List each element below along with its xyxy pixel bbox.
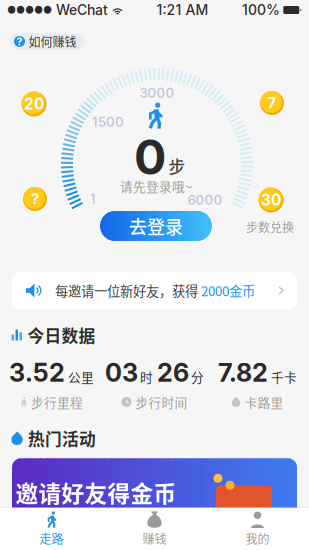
staticText: 邀请好友得金币: [15, 476, 176, 509]
staticText: 千卡: [271, 367, 297, 386]
staticText: 1:21 AM: [156, 1, 208, 18]
staticText: 6000: [187, 192, 222, 208]
staticText: 0: [134, 128, 166, 186]
staticText: 7: [267, 94, 276, 112]
button[interactable]: Coin help: [23, 187, 47, 211]
staticText: 热门活动: [28, 426, 96, 450]
button[interactable]: Coin 7: [260, 91, 284, 115]
staticText: 去登录: [129, 213, 183, 239]
staticText: 公里: [68, 367, 94, 386]
button[interactable]: 赚钱: [103, 508, 206, 550]
staticText: 26: [157, 357, 189, 388]
button[interactable]: 邀请好友得金币: [12, 458, 297, 520]
staticText: 7.82: [218, 357, 268, 388]
staticText: 我的: [245, 530, 269, 547]
staticText: 步: [168, 154, 185, 178]
staticText: 步行时间: [135, 393, 187, 411]
button[interactable]: 去登录: [100, 211, 212, 241]
staticText: WeChat: [52, 1, 112, 18]
staticText: 分: [191, 367, 204, 386]
staticText: 请先登录哦~: [120, 177, 192, 195]
staticText: 1: [90, 191, 96, 207]
staticText: 2000金币: [201, 281, 255, 300]
staticText: 20: [24, 95, 44, 113]
button[interactable]: Coin 30: [258, 187, 283, 212]
staticText: 100%: [242, 1, 280, 18]
staticText: ?: [31, 190, 39, 208]
staticText: 3000: [139, 85, 174, 101]
button[interactable]: 我的: [206, 508, 309, 550]
staticText: 3.52: [9, 357, 65, 388]
staticText: 每邀请一位新好友，获得: [55, 281, 201, 300]
staticText: 今日数据: [27, 323, 95, 347]
staticText: 03: [105, 357, 138, 388]
staticText: 如何赚钱: [28, 33, 76, 50]
staticText: 步数兑换: [246, 218, 294, 236]
staticText: ●●●●●: [7, 4, 52, 16]
staticText: 30: [261, 191, 281, 209]
staticText: 走路: [39, 530, 63, 547]
button[interactable]: Coin 20: [21, 91, 46, 116]
button[interactable]: 走路: [0, 508, 103, 550]
button[interactable]: 每邀请一位新好友，获得: [12, 272, 297, 309]
staticText: 1500: [92, 114, 124, 130]
button[interactable]: ?: [10, 33, 84, 50]
staticText: 赚钱: [142, 530, 166, 547]
staticText: ?: [16, 35, 22, 48]
staticText: 步行里程: [31, 393, 83, 411]
staticText: 时: [140, 367, 153, 386]
staticText: 卡路里: [244, 393, 283, 411]
